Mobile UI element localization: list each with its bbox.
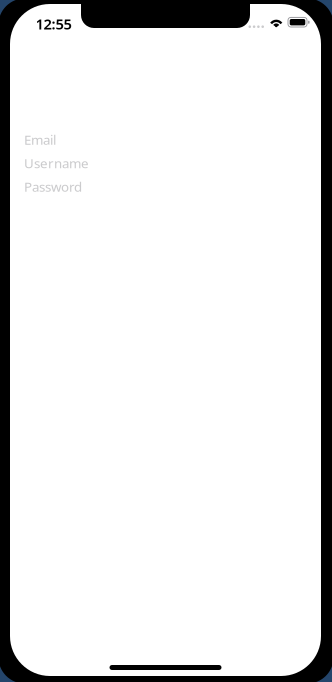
staticText: Email <box>24 131 56 148</box>
button[interactable]: Password <box>24 175 307 198</box>
staticText: 12:55 <box>35 14 71 33</box>
button[interactable]: Username <box>24 151 307 175</box>
button[interactable]: Email <box>24 128 307 151</box>
staticText: Username <box>24 154 89 172</box>
staticText: Password <box>24 178 82 195</box>
